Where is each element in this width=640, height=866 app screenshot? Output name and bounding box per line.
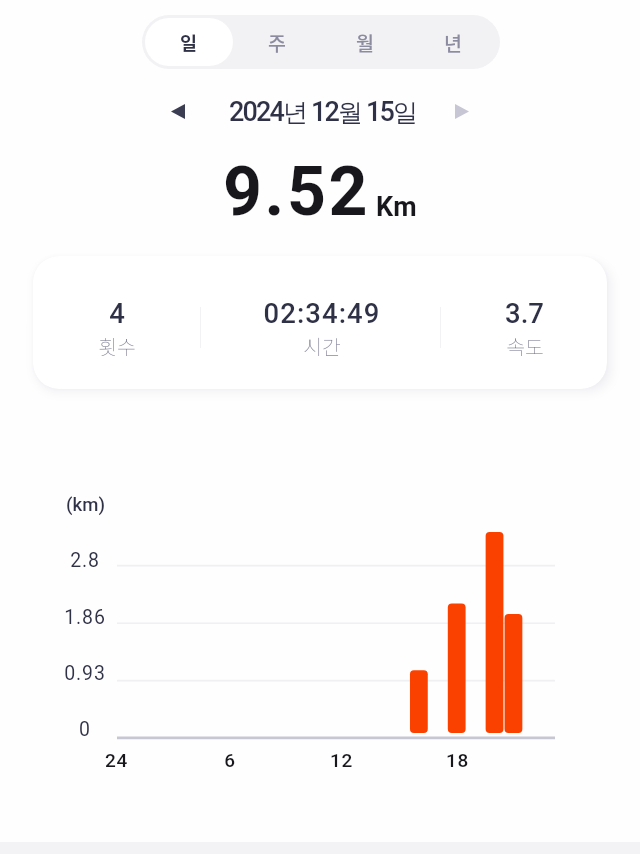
staticText: (km) xyxy=(66,494,105,516)
staticText: Km xyxy=(376,191,417,223)
staticText: 24 xyxy=(105,749,128,771)
button[interactable]: 일 xyxy=(145,18,233,66)
staticText: 6 xyxy=(224,749,236,771)
staticText: 9.52 xyxy=(223,152,371,228)
staticText: 12 xyxy=(330,749,353,771)
staticText: 4 xyxy=(109,297,125,323)
staticText: 0 xyxy=(79,718,91,741)
staticText: 속도 xyxy=(506,331,544,357)
staticText: 주 xyxy=(268,28,286,56)
button[interactable]: 주 xyxy=(233,18,321,66)
staticText: 년 xyxy=(444,28,462,56)
staticText: 일 xyxy=(180,29,198,56)
button[interactable]: Previous day xyxy=(155,88,201,134)
button[interactable]: Next day xyxy=(439,88,485,134)
staticText: 18 xyxy=(446,749,469,771)
staticText: 월 xyxy=(356,28,374,56)
staticText: 시간 xyxy=(303,331,341,357)
staticText: 3.7 xyxy=(505,297,544,323)
staticText: 0.93 xyxy=(64,662,106,685)
staticText: 2.8 xyxy=(70,549,100,572)
button[interactable]: 3.7 xyxy=(442,256,607,389)
staticText: 02:34:49 xyxy=(263,297,381,323)
staticText: 횟수 xyxy=(98,331,136,357)
button[interactable]: 월 xyxy=(321,18,409,66)
staticText: 2024년 12월 15일 xyxy=(229,96,417,128)
button[interactable]: 년 xyxy=(409,18,497,66)
button[interactable]: 4 xyxy=(33,256,201,389)
button[interactable]: 02:34:49 xyxy=(202,256,442,389)
staticText: 1.86 xyxy=(64,606,106,629)
